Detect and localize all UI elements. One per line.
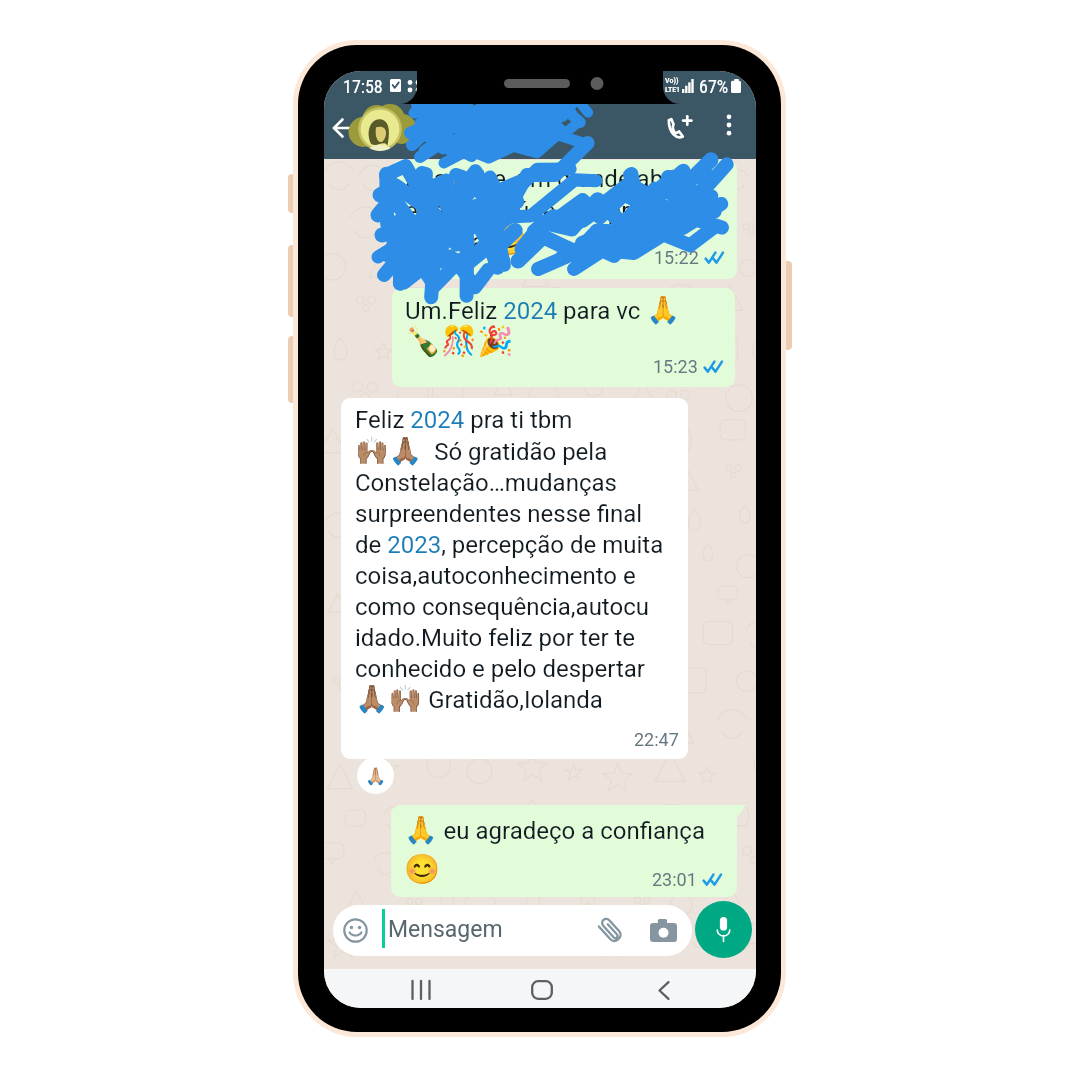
staticText: 15:23 xyxy=(653,356,698,377)
staticText: Boa noite, um grande abraço e muita saúd… xyxy=(405,165,711,257)
staticText: 23:01 xyxy=(652,869,697,890)
button[interactable]: Home xyxy=(531,980,553,1000)
button[interactable]: More options xyxy=(717,113,741,137)
button[interactable]: Reaction xyxy=(357,757,394,794)
staticText: 🙏 eu agradeço a confiança 😊 xyxy=(404,814,705,886)
staticText: Um.Feliz 2024 para vc 🙏 🍾🎊🎉 xyxy=(405,294,680,358)
button[interactable]: Video call xyxy=(666,113,694,141)
staticText: Feliz 2024 pra ti tbm 🙌🏽🙏🏽 Só gratidão p… xyxy=(355,406,688,714)
staticText: 67% xyxy=(699,76,729,97)
button[interactable]: Um.Feliz 2024 para vc 🙏 🍾🎊🎉 xyxy=(392,288,735,387)
button[interactable]: Emoji xyxy=(333,905,692,956)
button[interactable]: Back xyxy=(329,112,361,144)
button[interactable]: Feliz 2024 pra ti tbm 🙌🏽🙏🏽 Só gratidão p… xyxy=(341,398,688,759)
button[interactable]: Contact photo xyxy=(358,107,402,151)
button[interactable]: Record voice message xyxy=(695,901,752,958)
staticText: Vo)) xyxy=(665,76,679,85)
staticText: 15:22 xyxy=(654,247,699,268)
button[interactable]: Camera xyxy=(650,919,677,942)
button[interactable]: 🙏 eu agradeço a confiança 😊 xyxy=(391,805,737,897)
button[interactable]: Back xyxy=(656,980,672,1001)
button[interactable]: Recent apps xyxy=(411,981,431,999)
staticText: 17:58 xyxy=(343,76,383,97)
button[interactable]: Boa noite, um grande abraço e muita saúd… xyxy=(392,160,737,279)
staticText: Mensagem xyxy=(388,916,503,943)
staticText: 22:47 xyxy=(634,729,679,750)
staticText: 🙏🏼 xyxy=(365,766,387,786)
staticText: LTE1 xyxy=(665,85,681,94)
button[interactable]: Attach xyxy=(597,917,624,944)
button[interactable]: Emoji xyxy=(343,918,368,943)
